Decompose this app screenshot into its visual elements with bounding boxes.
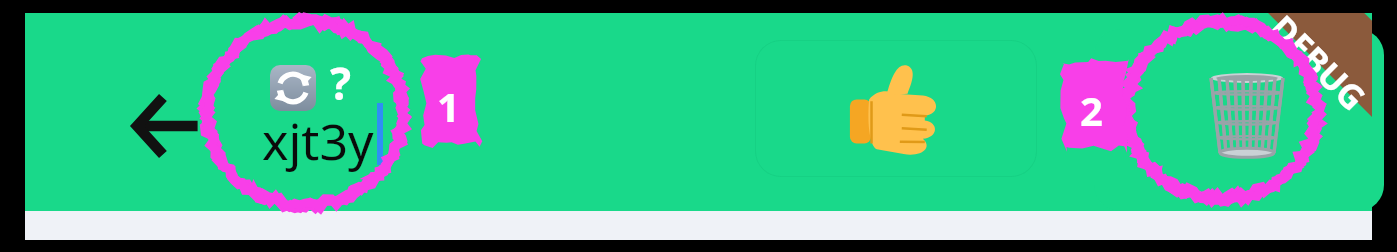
- button[interactable]: [755, 40, 1037, 177]
- staticText: ?: [330, 53, 351, 113]
- staticText: 1: [437, 79, 460, 133]
- button[interactable]: Back: [112, 71, 222, 181]
- staticText: DEBUG: [1261, 5, 1376, 120]
- staticText: 2: [1080, 83, 1103, 137]
- staticText: xjt3y: [262, 107, 374, 175]
- button[interactable]: ?: [240, 43, 420, 183]
- button[interactable]: [1094, 29, 1384, 211]
